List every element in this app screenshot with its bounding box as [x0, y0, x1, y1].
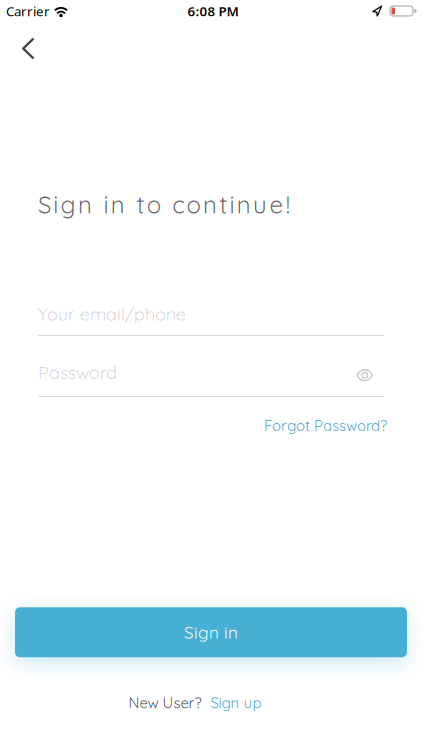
- staticText: o: [147, 189, 161, 219]
- staticText: o: [187, 189, 201, 219]
- staticText: i: [229, 189, 234, 219]
- staticText: n: [203, 189, 217, 219]
- button[interactable]: Sign up: [210, 693, 261, 712]
- staticText: Carrier: [6, 2, 50, 20]
- staticText: n: [78, 189, 92, 219]
- staticText: i: [103, 189, 108, 219]
- staticText: S: [38, 189, 51, 219]
- staticText: u: [253, 189, 267, 219]
- staticText: Sign up: [210, 693, 261, 712]
- staticText: Sign in: [184, 622, 238, 643]
- staticText: i: [53, 189, 58, 219]
- staticText: c: [172, 189, 184, 219]
- staticText: 6:08 PM: [187, 2, 238, 20]
- staticText: e: [269, 189, 283, 219]
- staticText: !: [286, 189, 290, 219]
- staticText: Your email/phone: [38, 302, 186, 325]
- staticText: t: [219, 189, 227, 219]
- button[interactable]: Forgot Password?: [264, 416, 387, 435]
- staticText: g: [61, 189, 76, 219]
- staticText: Forgot Password?: [264, 416, 387, 435]
- staticText: t: [136, 189, 144, 219]
- button[interactable]: Sign in: [15, 607, 407, 657]
- staticText: New User?: [128, 693, 201, 712]
- staticText: Password: [38, 361, 117, 383]
- staticText: n: [237, 189, 251, 219]
- button[interactable]: Show password: [356, 366, 384, 378]
- button[interactable]: Back: [6, 26, 50, 70]
- staticText: n: [111, 189, 125, 219]
